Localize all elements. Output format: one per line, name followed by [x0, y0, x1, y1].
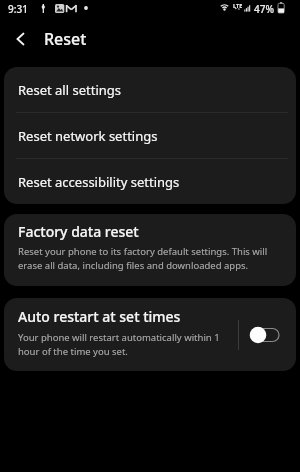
button[interactable]: Factory data reset — [4, 214, 296, 286]
button[interactable]: Reset all settings — [4, 67, 296, 112]
staticText: 9:31 — [8, 2, 28, 16]
staticText: hour of the time you set. — [18, 345, 128, 358]
staticText: Reset all settings — [18, 81, 121, 99]
staticText: Reset network settings — [18, 127, 158, 145]
button[interactable]: Reset accessibility settings — [4, 159, 296, 204]
staticText: Reset your phone to its factory default … — [18, 245, 268, 258]
button[interactable] — [239, 298, 296, 371]
staticText: Auto restart at set times — [18, 307, 181, 326]
staticText: Reset accessibility settings — [18, 173, 180, 191]
staticText: Your phone will restart automatically wi… — [18, 331, 220, 344]
staticText: Factory data reset — [18, 222, 139, 241]
staticText: LTE — [233, 2, 243, 9]
staticText: 47% — [254, 2, 274, 16]
button[interactable]: Auto restart at set times — [4, 298, 296, 371]
button[interactable]: Reset network settings — [4, 113, 296, 158]
staticText: Reset — [44, 28, 87, 50]
staticText: erase all data, including files and down… — [18, 259, 249, 272]
button[interactable] — [0, 20, 44, 57]
